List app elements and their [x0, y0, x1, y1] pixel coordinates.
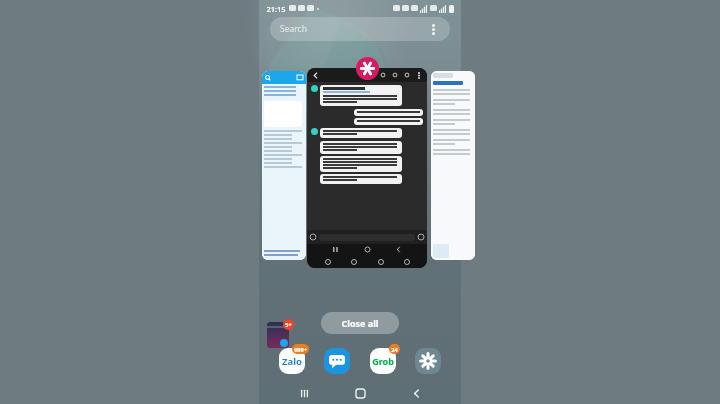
button[interactable]: Search [270, 17, 450, 41]
button[interactable]: More [414, 71, 423, 80]
staticText: 5+ [285, 321, 292, 328]
button[interactable]: Back [307, 68, 427, 268]
button[interactable]: Action [402, 70, 412, 80]
button[interactable]: App icon [356, 57, 379, 80]
staticText: Close all [341, 317, 379, 329]
staticText: Zalo [282, 355, 302, 368]
button[interactable]: More options [426, 22, 440, 36]
button[interactable]: Back [405, 382, 427, 404]
button[interactable]: Action [378, 70, 388, 80]
button[interactable]: Action [390, 70, 400, 80]
button[interactable] [431, 71, 475, 260]
button[interactable]: Settings [413, 344, 443, 374]
staticText: Search [280, 23, 307, 35]
staticText: 24 [391, 346, 398, 353]
button[interactable]: Favorite [322, 256, 333, 267]
button[interactable] [262, 71, 306, 260]
button[interactable]: Edit [348, 256, 359, 267]
button[interactable]: Delete [401, 256, 412, 267]
staticText: 999+ [294, 346, 307, 353]
button[interactable]: Widget [267, 322, 289, 348]
button[interactable]: Share [375, 256, 386, 267]
button[interactable]: Close all [321, 312, 399, 334]
button[interactable]: Back [311, 71, 320, 80]
button[interactable]: Grab [368, 344, 398, 374]
staticText: 21:15 [266, 4, 286, 14]
button[interactable]: Recents [293, 382, 315, 404]
staticText: Grob [372, 355, 394, 367]
button[interactable]: Messages [322, 344, 352, 374]
button[interactable]: Home [349, 382, 371, 404]
button[interactable]: Zalo [277, 344, 307, 374]
